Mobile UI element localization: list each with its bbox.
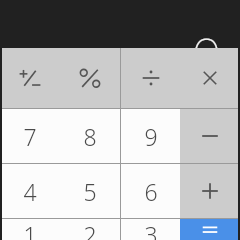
button[interactable]: Minus xyxy=(180,109,240,163)
staticText: 2 xyxy=(83,219,97,240)
button[interactable]: Plus minus xyxy=(0,48,60,108)
button[interactable]: 9 xyxy=(121,109,180,163)
button[interactable]: 6 xyxy=(121,164,180,218)
staticText: 7 xyxy=(23,121,37,152)
staticText: 8 xyxy=(83,121,97,152)
staticText: 3 xyxy=(144,219,158,240)
staticText: 0 xyxy=(191,20,222,68)
button[interactable]: 4 xyxy=(0,164,60,218)
button[interactable]: 3 xyxy=(121,219,180,240)
button[interactable]: Plus xyxy=(180,164,240,218)
button[interactable]: 7 xyxy=(0,109,60,163)
button[interactable]: 5 xyxy=(60,164,120,218)
staticText: 4 xyxy=(23,176,37,207)
button[interactable]: 2 xyxy=(60,219,120,240)
button[interactable]: Equals xyxy=(180,219,240,240)
button[interactable]: 8 xyxy=(60,109,120,163)
staticText: 5 xyxy=(83,176,97,207)
staticText: 1 xyxy=(23,219,37,240)
button[interactable]: Divide xyxy=(121,48,180,108)
button[interactable]: 1 xyxy=(0,219,60,240)
staticText: 6 xyxy=(144,176,158,207)
button[interactable]: Multiply xyxy=(180,48,240,108)
staticText: 9 xyxy=(144,121,158,152)
button[interactable]: Percent xyxy=(60,48,120,108)
